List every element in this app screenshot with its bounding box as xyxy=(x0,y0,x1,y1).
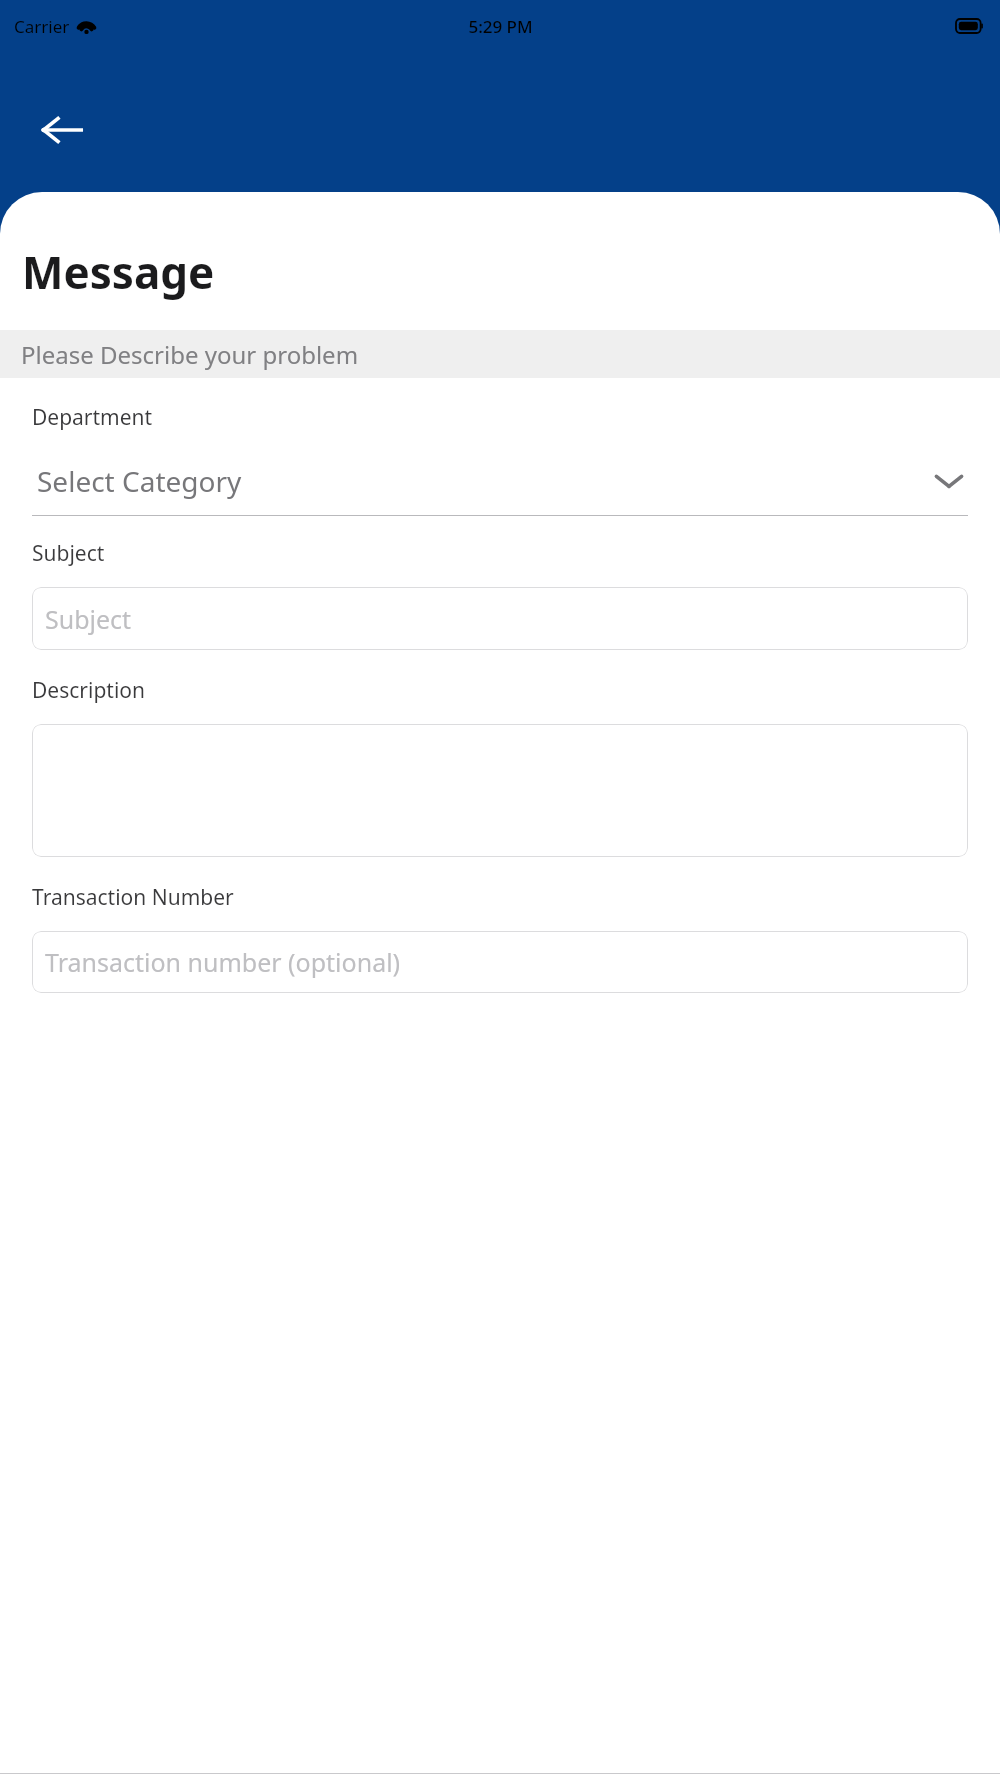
staticText: Transaction number (optional) xyxy=(45,945,401,979)
staticText: Subject xyxy=(32,539,105,568)
staticText: Select Category xyxy=(37,462,242,500)
staticText: Carrier xyxy=(14,15,70,38)
staticText: Please Describe your problem xyxy=(21,338,359,371)
staticText: 5:29 PM xyxy=(468,15,533,38)
staticText: Subject xyxy=(45,602,132,636)
other: Open category list xyxy=(934,472,964,490)
button[interactable]: Back xyxy=(30,98,94,162)
button[interactable]: Subject xyxy=(32,587,968,650)
staticText: Description xyxy=(32,676,146,705)
staticText: Transaction Number xyxy=(32,883,234,912)
staticText: Message xyxy=(22,242,215,302)
button[interactable] xyxy=(32,724,968,857)
button[interactable]: Transaction number (optional) xyxy=(32,931,968,993)
staticText: Department xyxy=(32,403,153,432)
button[interactable]: Select Category xyxy=(32,458,968,516)
